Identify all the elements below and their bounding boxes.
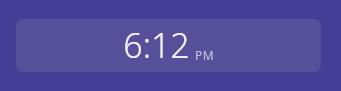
- button[interactable]: 6:12: [16, 19, 321, 72]
- staticText: PM: [195, 47, 215, 63]
- staticText: 6:12: [123, 22, 190, 68]
